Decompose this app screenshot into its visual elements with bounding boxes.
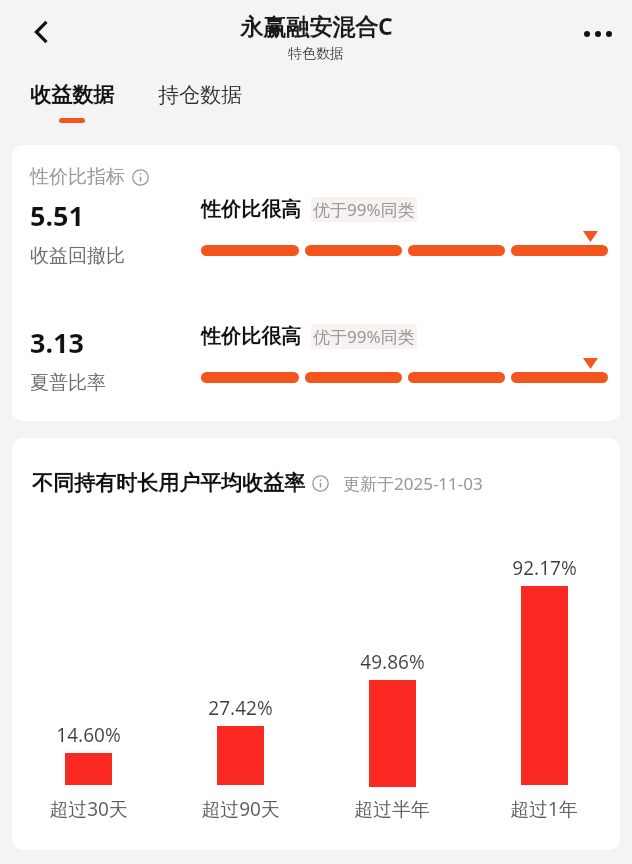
staticText: 优于99%同类	[313, 198, 415, 221]
staticText: 49.86%	[360, 649, 425, 675]
staticText: 性价比很高	[201, 324, 301, 349]
staticText: 持仓数据	[158, 82, 242, 108]
staticText: 优于99%同类	[313, 325, 415, 348]
button[interactable]: 性价比指标	[12, 145, 620, 421]
staticText: 92.17%	[512, 555, 577, 581]
staticText: 3.13	[30, 324, 84, 361]
staticText: 超过90天	[201, 796, 280, 822]
button[interactable]: More options	[572, 8, 624, 60]
staticText: 不同持有时长用户平均收益率	[32, 470, 305, 496]
button[interactable]: 不同持有时长用户平均收益率	[12, 438, 620, 850]
staticText: 夏普比率	[30, 371, 106, 395]
staticText: 性价比很高	[201, 197, 301, 222]
button[interactable]: 持仓数据	[154, 78, 246, 112]
button[interactable]: Back	[16, 6, 68, 58]
staticText: 14.60%	[56, 722, 121, 748]
staticText: 性价比指标	[30, 165, 125, 189]
staticText: 特色数据	[288, 45, 344, 63]
staticText: 超过1年	[510, 796, 578, 822]
staticText: 超过30天	[49, 796, 128, 822]
staticText: 收益数据	[30, 82, 114, 108]
staticText: 27.42%	[208, 695, 273, 721]
staticText: 超过半年	[354, 798, 430, 822]
button[interactable]: 收益数据	[26, 78, 118, 127]
staticText: 更新于2025-11-03	[343, 472, 483, 495]
staticText: 永赢融安混合C	[240, 10, 393, 41]
staticText: 收益回撤比	[30, 244, 125, 268]
staticText: 5.51	[30, 197, 84, 234]
